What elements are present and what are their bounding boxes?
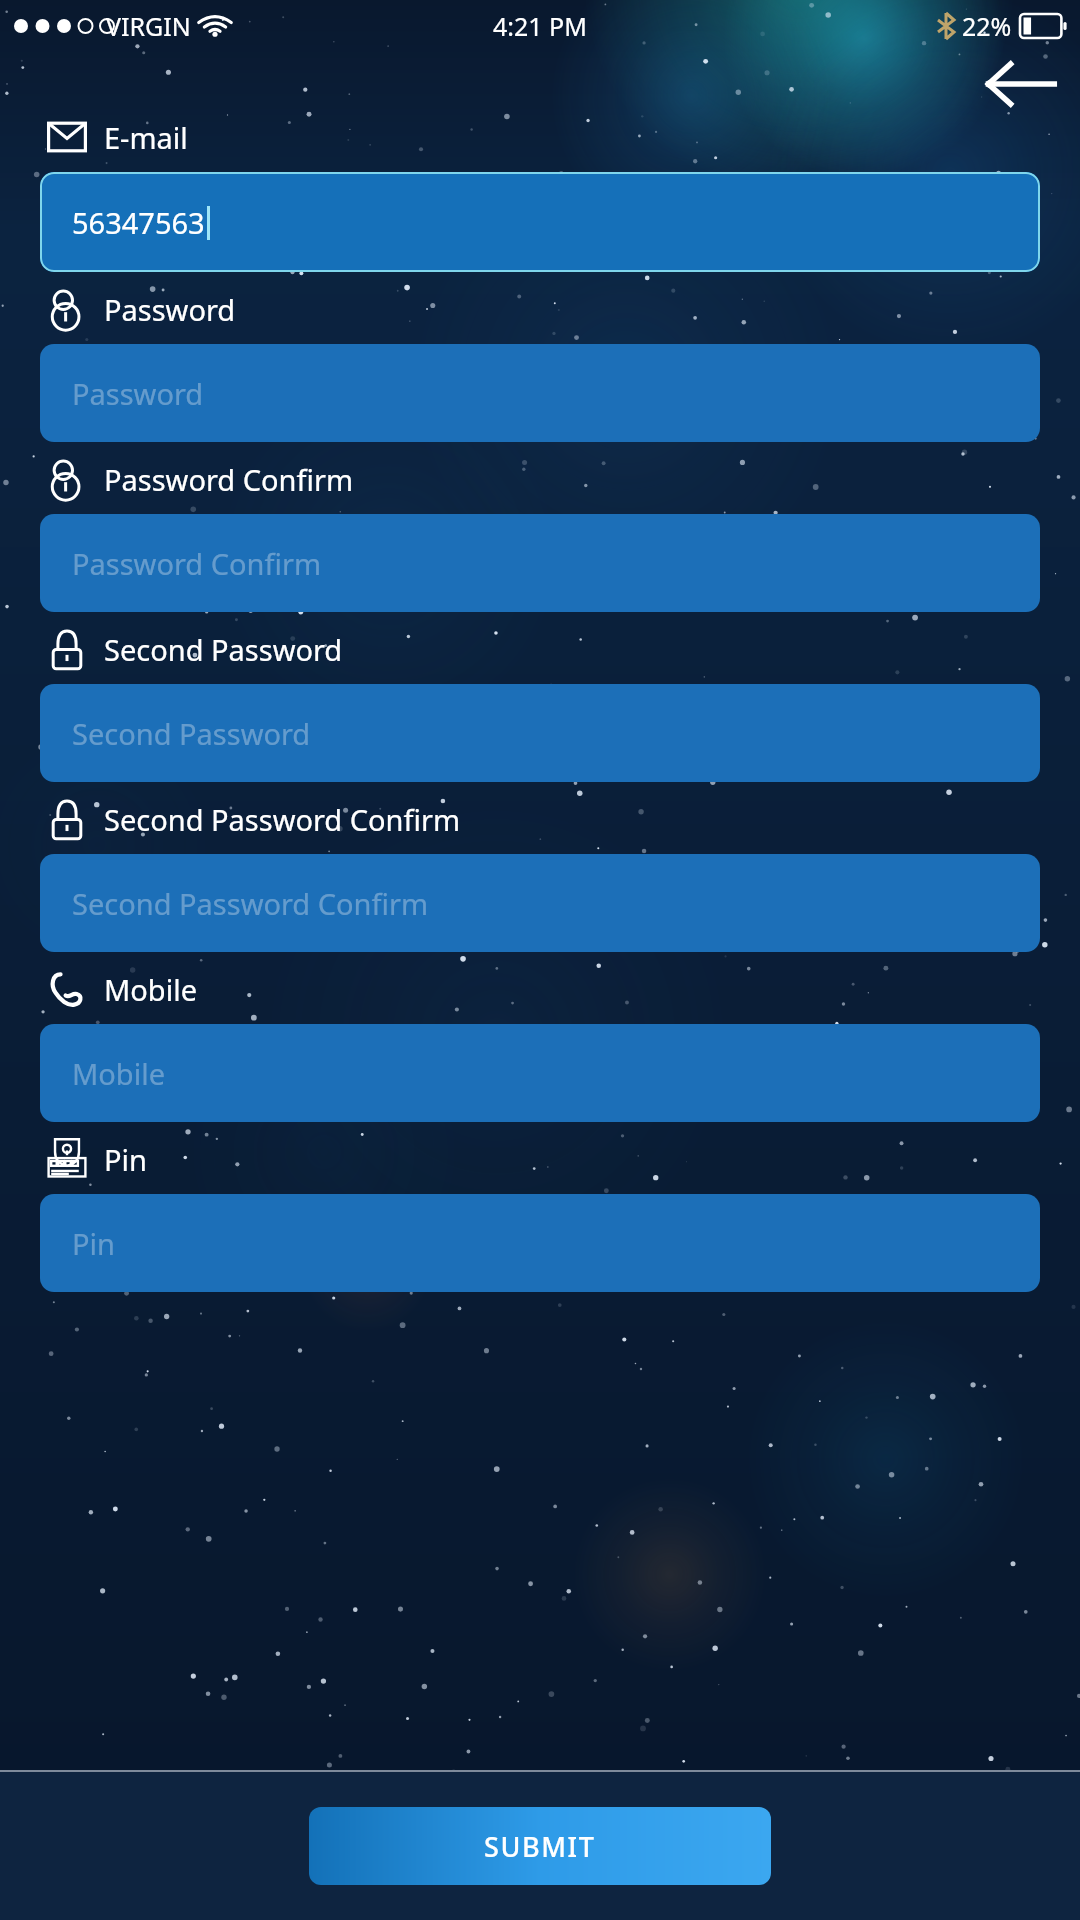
staticText: Pin (104, 1140, 147, 1179)
staticText: Second Password (72, 714, 311, 753)
staticText: Second Password Confirm (72, 884, 429, 923)
button[interactable]: Second Password (40, 684, 1040, 782)
staticText: 22% (962, 9, 1012, 43)
button[interactable]: Back (984, 58, 1058, 108)
staticText: Pin (72, 1224, 115, 1263)
staticText: Password Confirm (104, 460, 354, 499)
staticText: Second Password (104, 630, 343, 669)
staticText: Password Confirm (72, 544, 322, 583)
staticText: Password (104, 290, 236, 329)
button[interactable]: Pin (40, 1194, 1040, 1292)
button[interactable]: Password (40, 344, 1040, 442)
staticText: VIRGIN (106, 9, 191, 43)
staticText: 4:21 PM (493, 9, 587, 43)
staticText: SUBMIT (484, 1828, 596, 1865)
staticText: Second Password Confirm (104, 800, 461, 839)
staticText: Password (72, 374, 204, 413)
button[interactable]: Mobile (40, 1024, 1040, 1122)
button[interactable]: 56347563 (40, 172, 1040, 272)
staticText: Mobile (72, 1054, 166, 1093)
button[interactable]: Password Confirm (40, 514, 1040, 612)
button[interactable]: Second Password Confirm (40, 854, 1040, 952)
staticText: 56347563 (72, 203, 205, 242)
staticText: E-mail (104, 118, 188, 157)
button[interactable]: SUBMIT (309, 1807, 771, 1885)
staticText: Mobile (104, 970, 198, 1009)
